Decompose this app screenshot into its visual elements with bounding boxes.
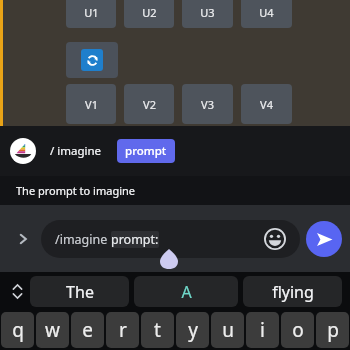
button[interactable]: e — [71, 312, 104, 348]
button[interactable]: Send — [306, 221, 342, 257]
staticText: t — [154, 317, 161, 343]
button[interactable]: V4 — [241, 84, 292, 124]
button[interactable]: o — [281, 312, 314, 348]
staticText: U3 — [200, 5, 215, 20]
staticText: / imagine — [50, 143, 102, 159]
staticText: o — [292, 317, 304, 343]
button[interactable]: U1 — [66, 0, 116, 28]
button[interactable]: U3 — [182, 0, 233, 28]
button[interactable]: A — [134, 276, 238, 307]
button[interactable]: V1 — [66, 84, 116, 124]
button[interactable]: flying — [243, 276, 342, 307]
staticText: y — [188, 317, 198, 343]
button[interactable]: Expand suggestions — [4, 272, 30, 310]
button[interactable]: Re-roll — [66, 42, 118, 78]
staticText: V3 — [201, 97, 214, 112]
staticText: p — [327, 317, 339, 343]
staticText: V4 — [260, 97, 273, 112]
staticText: The prompt to imagine — [16, 183, 135, 198]
button[interactable]: i — [246, 312, 279, 348]
staticText: i — [260, 317, 265, 343]
staticText: prompt: — [111, 231, 159, 248]
staticText: w — [45, 317, 60, 343]
button[interactable]: r — [106, 312, 139, 348]
staticText: V2 — [143, 97, 156, 112]
staticText: U1 — [84, 5, 99, 20]
button[interactable]: q — [1, 312, 34, 348]
button[interactable]: u — [211, 312, 244, 348]
button[interactable]: / imagine — [0, 126, 350, 176]
staticText: u — [222, 317, 234, 343]
staticText: A — [181, 281, 192, 303]
staticText: prompt — [125, 143, 167, 159]
button[interactable]: t — [141, 312, 174, 348]
button[interactable]: Open actions — [8, 224, 38, 254]
button[interactable]: U4 — [241, 0, 292, 28]
staticText: flying — [272, 281, 314, 303]
button[interactable]: Emoji — [264, 228, 286, 250]
button[interactable]: w — [36, 312, 69, 348]
button[interactable]: y — [176, 312, 209, 348]
button[interactable]: /imagine — [41, 220, 300, 258]
button[interactable]: V3 — [182, 84, 233, 124]
staticText: U4 — [259, 5, 274, 20]
staticText: /imagine — [55, 231, 111, 248]
staticText: The — [66, 281, 94, 303]
button[interactable]: U2 — [124, 0, 174, 28]
staticText: V1 — [85, 97, 98, 112]
staticText: q — [12, 317, 24, 343]
staticText: r — [119, 317, 127, 343]
button[interactable]: p — [316, 312, 349, 348]
staticText: e — [82, 317, 93, 343]
button[interactable]: V2 — [124, 84, 174, 124]
button[interactable]: The — [30, 276, 129, 307]
staticText: U2 — [142, 5, 157, 20]
